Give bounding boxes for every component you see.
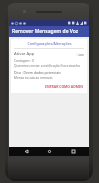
- staticText: ENTRAR COMO ADMIN: [45, 84, 83, 89]
- staticText: Contagem : 0: [14, 59, 34, 63]
- button[interactable]: Remover Mensagem de Voz: [9, 26, 89, 37]
- staticText: Dica : Deem dados potenciais: [14, 70, 61, 75]
- staticText: Mensa escuta ao remover.: [14, 76, 53, 80]
- button[interactable]: Ativar App: [14, 51, 84, 57]
- staticText: Ativar App: [14, 51, 35, 57]
- button[interactable]: Back: [19, 147, 33, 156]
- staticText: Configurações/Alterações: [27, 41, 72, 46]
- button[interactable]: Home: [42, 147, 56, 156]
- staticText: Remover Mensagem de Voz: [12, 28, 79, 35]
- button[interactable]: Ativar App toggle: [76, 52, 84, 57]
- button[interactable]: ENTRAR COMO ADMIN: [44, 83, 84, 90]
- button[interactable]: Recents: [66, 147, 80, 156]
- staticText: Queremos enviar a notificação fica estra…: [14, 64, 80, 68]
